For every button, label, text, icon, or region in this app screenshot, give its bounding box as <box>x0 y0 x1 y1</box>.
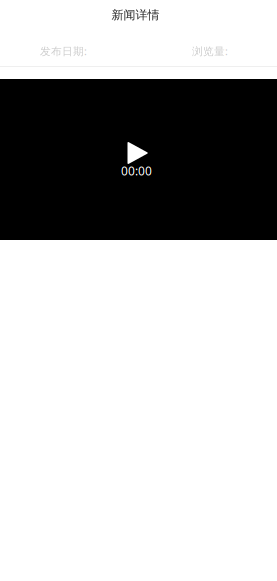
button[interactable]: Play video <box>0 79 277 240</box>
staticText: 发布日期: <box>40 44 87 58</box>
staticText: 新闻详情 <box>111 8 159 22</box>
staticText: 00:00 <box>121 163 152 179</box>
staticText: 浏览量: <box>192 44 228 58</box>
